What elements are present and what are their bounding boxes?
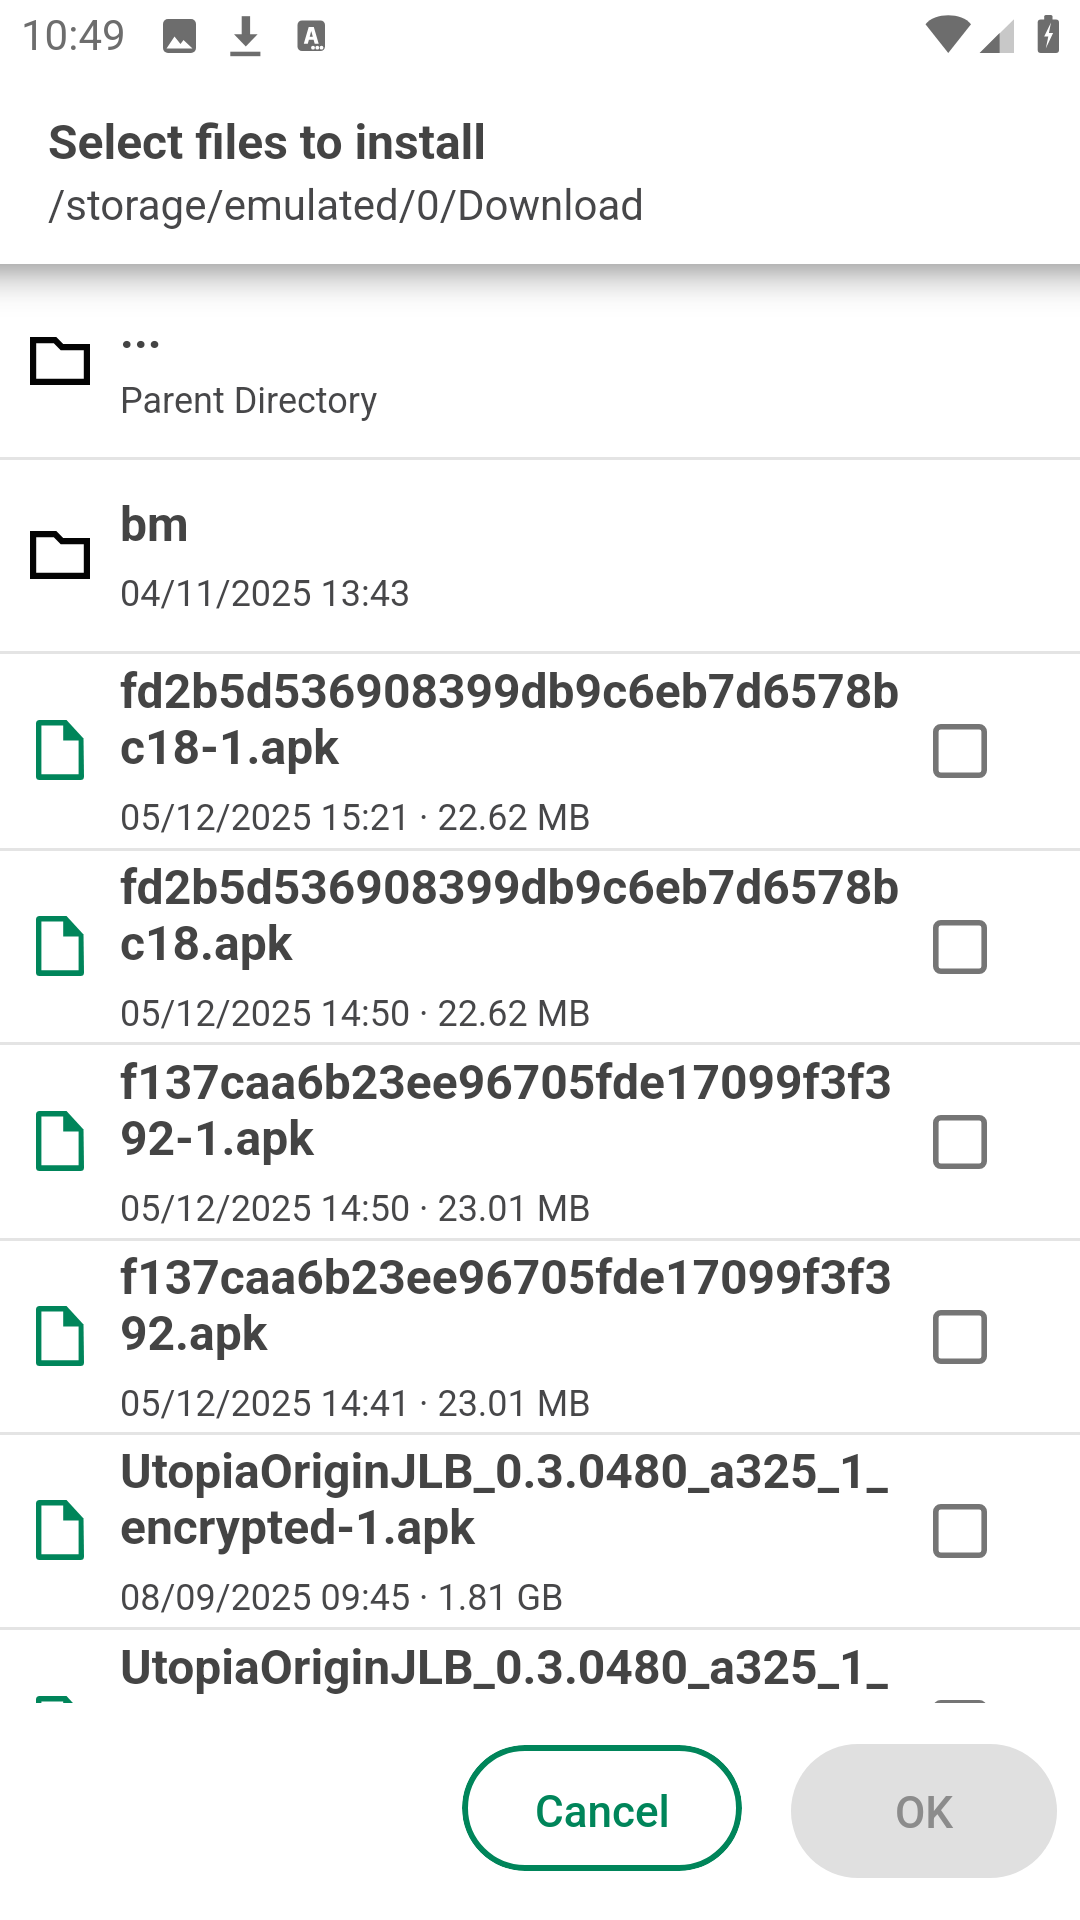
staticText: bm <box>120 496 189 552</box>
staticText: Cancel <box>535 1786 670 1838</box>
staticText: 05/12/2025 14:50 · 22.62 MB <box>120 993 591 1035</box>
staticText: 10:49 <box>21 11 126 60</box>
button[interactable]: OK <box>791 1744 1057 1878</box>
staticText: fd2b5d536908399db9c6eb7d6578bc18.apk <box>120 859 902 972</box>
staticText: 04/11/2025 13:43 <box>120 573 411 615</box>
staticText: f137caa6b23ee96705fde17099f3f392-1.apk <box>120 1054 902 1167</box>
button[interactable]: UtopiaOriginJLB_0.3.0480_a325_1_encrypte… <box>0 1435 1080 1627</box>
button[interactable]: Select file <box>933 1115 987 1169</box>
button[interactable]: Select file <box>933 1504 987 1558</box>
button[interactable]: f137caa6b23ee96705fde17099f3f392.apk <box>0 1241 1080 1432</box>
staticText: Select files to install <box>48 114 487 170</box>
button[interactable]: f137caa6b23ee96705fde17099f3f392-1.apk <box>0 1045 1080 1238</box>
staticText: UtopiaOriginJLB_0.3.0480_a325_1_encrypte… <box>120 1639 902 1703</box>
button[interactable]: Select file <box>933 1700 987 1703</box>
button[interactable]: Cancel <box>462 1745 742 1871</box>
button[interactable]: Select file <box>933 920 987 974</box>
staticText: 05/12/2025 14:50 · 23.01 MB <box>120 1188 591 1230</box>
staticText: 08/09/2025 09:45 · 1.81 GB <box>120 1577 564 1619</box>
button[interactable]: ... <box>0 267 1080 457</box>
staticText: Parent Directory <box>120 380 378 422</box>
button[interactable]: Select file <box>933 1310 987 1364</box>
button[interactable]: bm <box>0 460 1080 651</box>
staticText: ... <box>120 303 162 359</box>
staticText: f137caa6b23ee96705fde17099f3f392.apk <box>120 1249 902 1362</box>
button[interactable]: UtopiaOriginJLB_0.3.0480_a325_1_encrypte… <box>0 1630 1080 1703</box>
staticText: 05/12/2025 15:21 · 22.62 MB <box>120 797 591 839</box>
staticText: OK <box>895 1787 954 1839</box>
staticText: fd2b5d536908399db9c6eb7d6578bc18-1.apk <box>120 663 902 776</box>
staticText: /storage/emulated/0/Download <box>48 181 644 230</box>
button[interactable]: fd2b5d536908399db9c6eb7d6578bc18.apk <box>0 851 1080 1042</box>
button[interactable]: fd2b5d536908399db9c6eb7d6578bc18-1.apk <box>0 654 1080 848</box>
staticText: UtopiaOriginJLB_0.3.0480_a325_1_encrypte… <box>120 1443 902 1556</box>
button[interactable]: Select file <box>933 724 987 778</box>
staticText: 05/12/2025 14:41 · 23.01 MB <box>120 1383 591 1425</box>
